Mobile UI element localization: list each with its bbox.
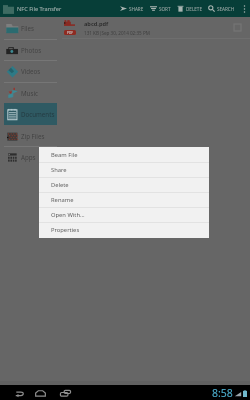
- button[interactable]: Music: [4, 82, 57, 104]
- staticText: PDF: [67, 31, 74, 35]
- button[interactable]: App icon: [1, 2, 15, 16]
- button[interactable]: Back: [12, 385, 25, 400]
- button[interactable]: Zip Files: [4, 125, 57, 147]
- button[interactable]: Videos: [4, 60, 57, 82]
- button[interactable]: Open With...: [39, 207, 209, 222]
- button[interactable]: Properties: [39, 222, 209, 237]
- button[interactable]: Delete: [39, 177, 209, 192]
- staticText: DELETE: [186, 6, 202, 12]
- button[interactable]: Beam File: [39, 147, 209, 162]
- staticText: Share: [51, 166, 67, 174]
- staticText: Open With...: [51, 211, 85, 219]
- staticText: Zip Files: [21, 132, 45, 140]
- staticText: NFC File Transfer: [17, 5, 62, 13]
- staticText: 131 KB|Sep 30, 2014 02:35 PM: [84, 30, 150, 36]
- staticText: Beam File: [51, 151, 78, 159]
- button[interactable]: More options: [238, 0, 250, 17]
- staticText: Documents: [21, 110, 55, 118]
- button[interactable]: Home: [34, 385, 47, 400]
- button[interactable]: SORT: [147, 0, 174, 17]
- staticText: Files: [21, 24, 34, 32]
- button[interactable]: Files: [4, 17, 57, 39]
- button[interactable]: Apps: [4, 146, 57, 168]
- staticText: Rename: [51, 196, 74, 204]
- staticText: abcd.pdf: [84, 20, 109, 28]
- staticText: Apps: [21, 153, 36, 161]
- staticText: Photos: [21, 46, 42, 54]
- button[interactable]: SEARCH: [205, 0, 238, 17]
- button[interactable]: SHARE: [117, 0, 147, 17]
- button[interactable]: Photos: [4, 39, 57, 61]
- staticText: 8:58: [212, 386, 233, 400]
- button[interactable]: DELETE: [174, 0, 205, 17]
- button[interactable]: PDF: [62, 17, 250, 38]
- button[interactable]: Recent apps: [59, 385, 72, 400]
- staticText: SORT: [159, 6, 171, 12]
- staticText: Music: [21, 89, 38, 97]
- button[interactable]: Rename: [39, 192, 209, 207]
- staticText: SHARE: [129, 6, 144, 12]
- staticText: Properties: [51, 226, 80, 234]
- button[interactable]: Share: [39, 162, 209, 177]
- button[interactable]: Select file: [233, 23, 242, 32]
- staticText: Delete: [51, 181, 69, 189]
- button[interactable]: Documents: [4, 103, 57, 125]
- staticText: Videos: [21, 67, 41, 75]
- staticText: SEARCH: [217, 6, 235, 12]
